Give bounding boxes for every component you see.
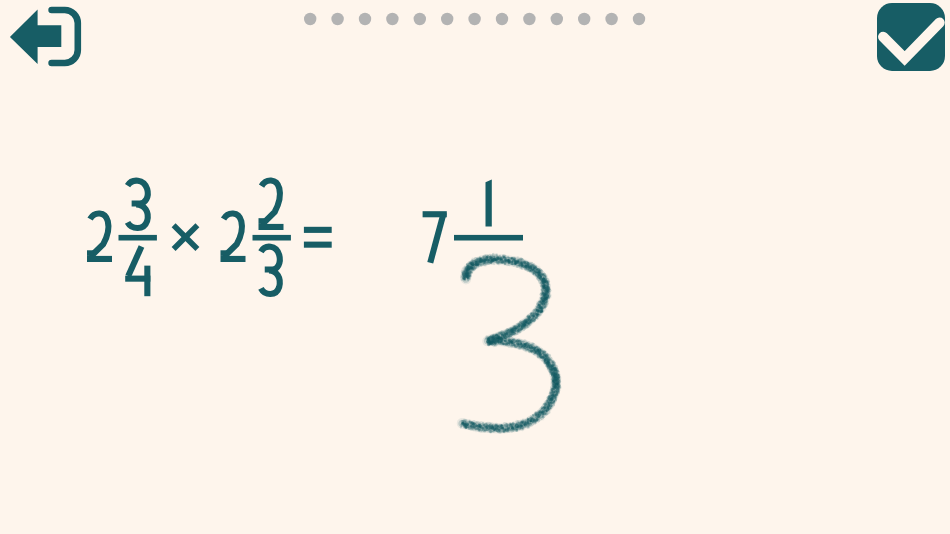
button[interactable]: Exit (0, 0, 100, 80)
button[interactable]: Check answer (877, 3, 945, 71)
